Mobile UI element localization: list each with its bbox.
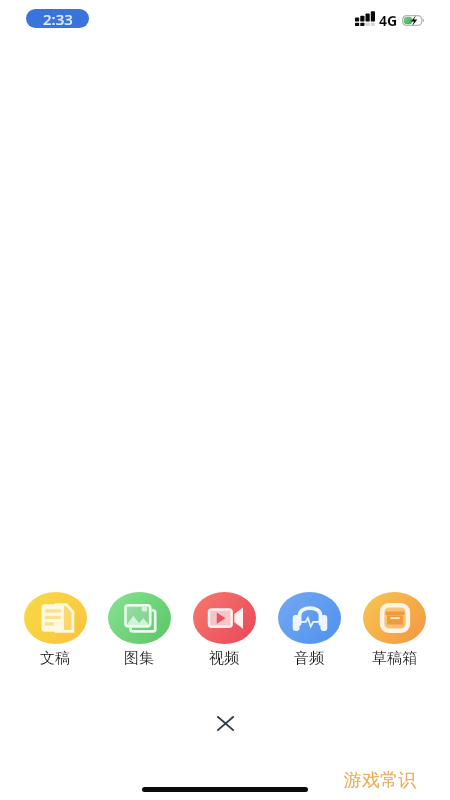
button[interactable]: 文稿	[18, 589, 92, 672]
button[interactable]: 草稿箱	[357, 589, 431, 672]
staticText: 游戏常识	[344, 769, 416, 792]
staticText: 视频	[209, 649, 239, 668]
staticText: 2:33	[43, 9, 73, 28]
button[interactable]: 视频	[187, 589, 261, 672]
staticText: 音频	[294, 649, 324, 668]
staticText: 图集	[124, 649, 154, 668]
staticText: 文稿	[40, 649, 70, 668]
staticText: 草稿箱	[372, 649, 417, 668]
button[interactable]: Close	[203, 701, 247, 745]
staticText: 4G	[379, 11, 398, 30]
button[interactable]: 图集	[102, 589, 176, 672]
button[interactable]: 音频	[272, 589, 346, 672]
